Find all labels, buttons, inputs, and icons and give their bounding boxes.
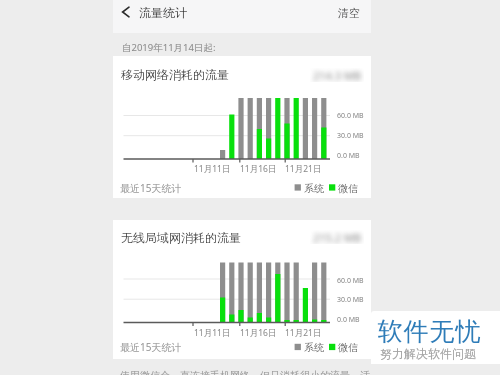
staticText: 11月21日 <box>285 327 322 339</box>
staticText: 0.0 MB <box>337 315 360 325</box>
staticText: 30.0 MB <box>337 131 364 141</box>
staticText: 30.0 MB <box>337 295 364 305</box>
staticText: 无线局域网消耗的流量 <box>121 230 241 245</box>
staticText: 11月16日 <box>240 327 277 339</box>
staticText: 60.0 MB <box>337 276 364 286</box>
button[interactable]: 清空 <box>338 4 360 22</box>
staticText: 微信 <box>338 341 358 354</box>
staticText: 系统 <box>304 341 324 354</box>
staticText: 清空 <box>338 6 360 20</box>
staticText: 11月11日 <box>194 327 231 339</box>
staticText: 系统 <box>304 182 324 195</box>
staticText: 11月11日 <box>194 163 231 175</box>
staticText: 11月16日 <box>240 163 277 175</box>
button[interactable] <box>114 0 142 32</box>
staticText: 215.2 MB <box>313 230 362 244</box>
staticText: 软件无忧 <box>377 316 481 347</box>
staticText: 0.0 MB <box>337 151 360 161</box>
staticText: 自2019年11月14日起: <box>122 41 216 54</box>
staticText: 最近15天统计 <box>120 340 182 354</box>
staticText: 214.3 MB <box>313 68 362 82</box>
staticText: 移动网络消耗的流量 <box>121 67 229 82</box>
staticText: 11月21日 <box>285 163 322 175</box>
staticText: 微信 <box>338 182 358 195</box>
staticText: 流量统计 <box>139 5 187 20</box>
staticText: 使用微信会一直连接手机网络，但只消耗很小的流量，适 <box>120 369 370 375</box>
staticText: 最近15天统计 <box>120 181 182 195</box>
staticText: 努力解决软件问题 <box>380 346 476 361</box>
staticText: 60.0 MB <box>337 111 364 121</box>
